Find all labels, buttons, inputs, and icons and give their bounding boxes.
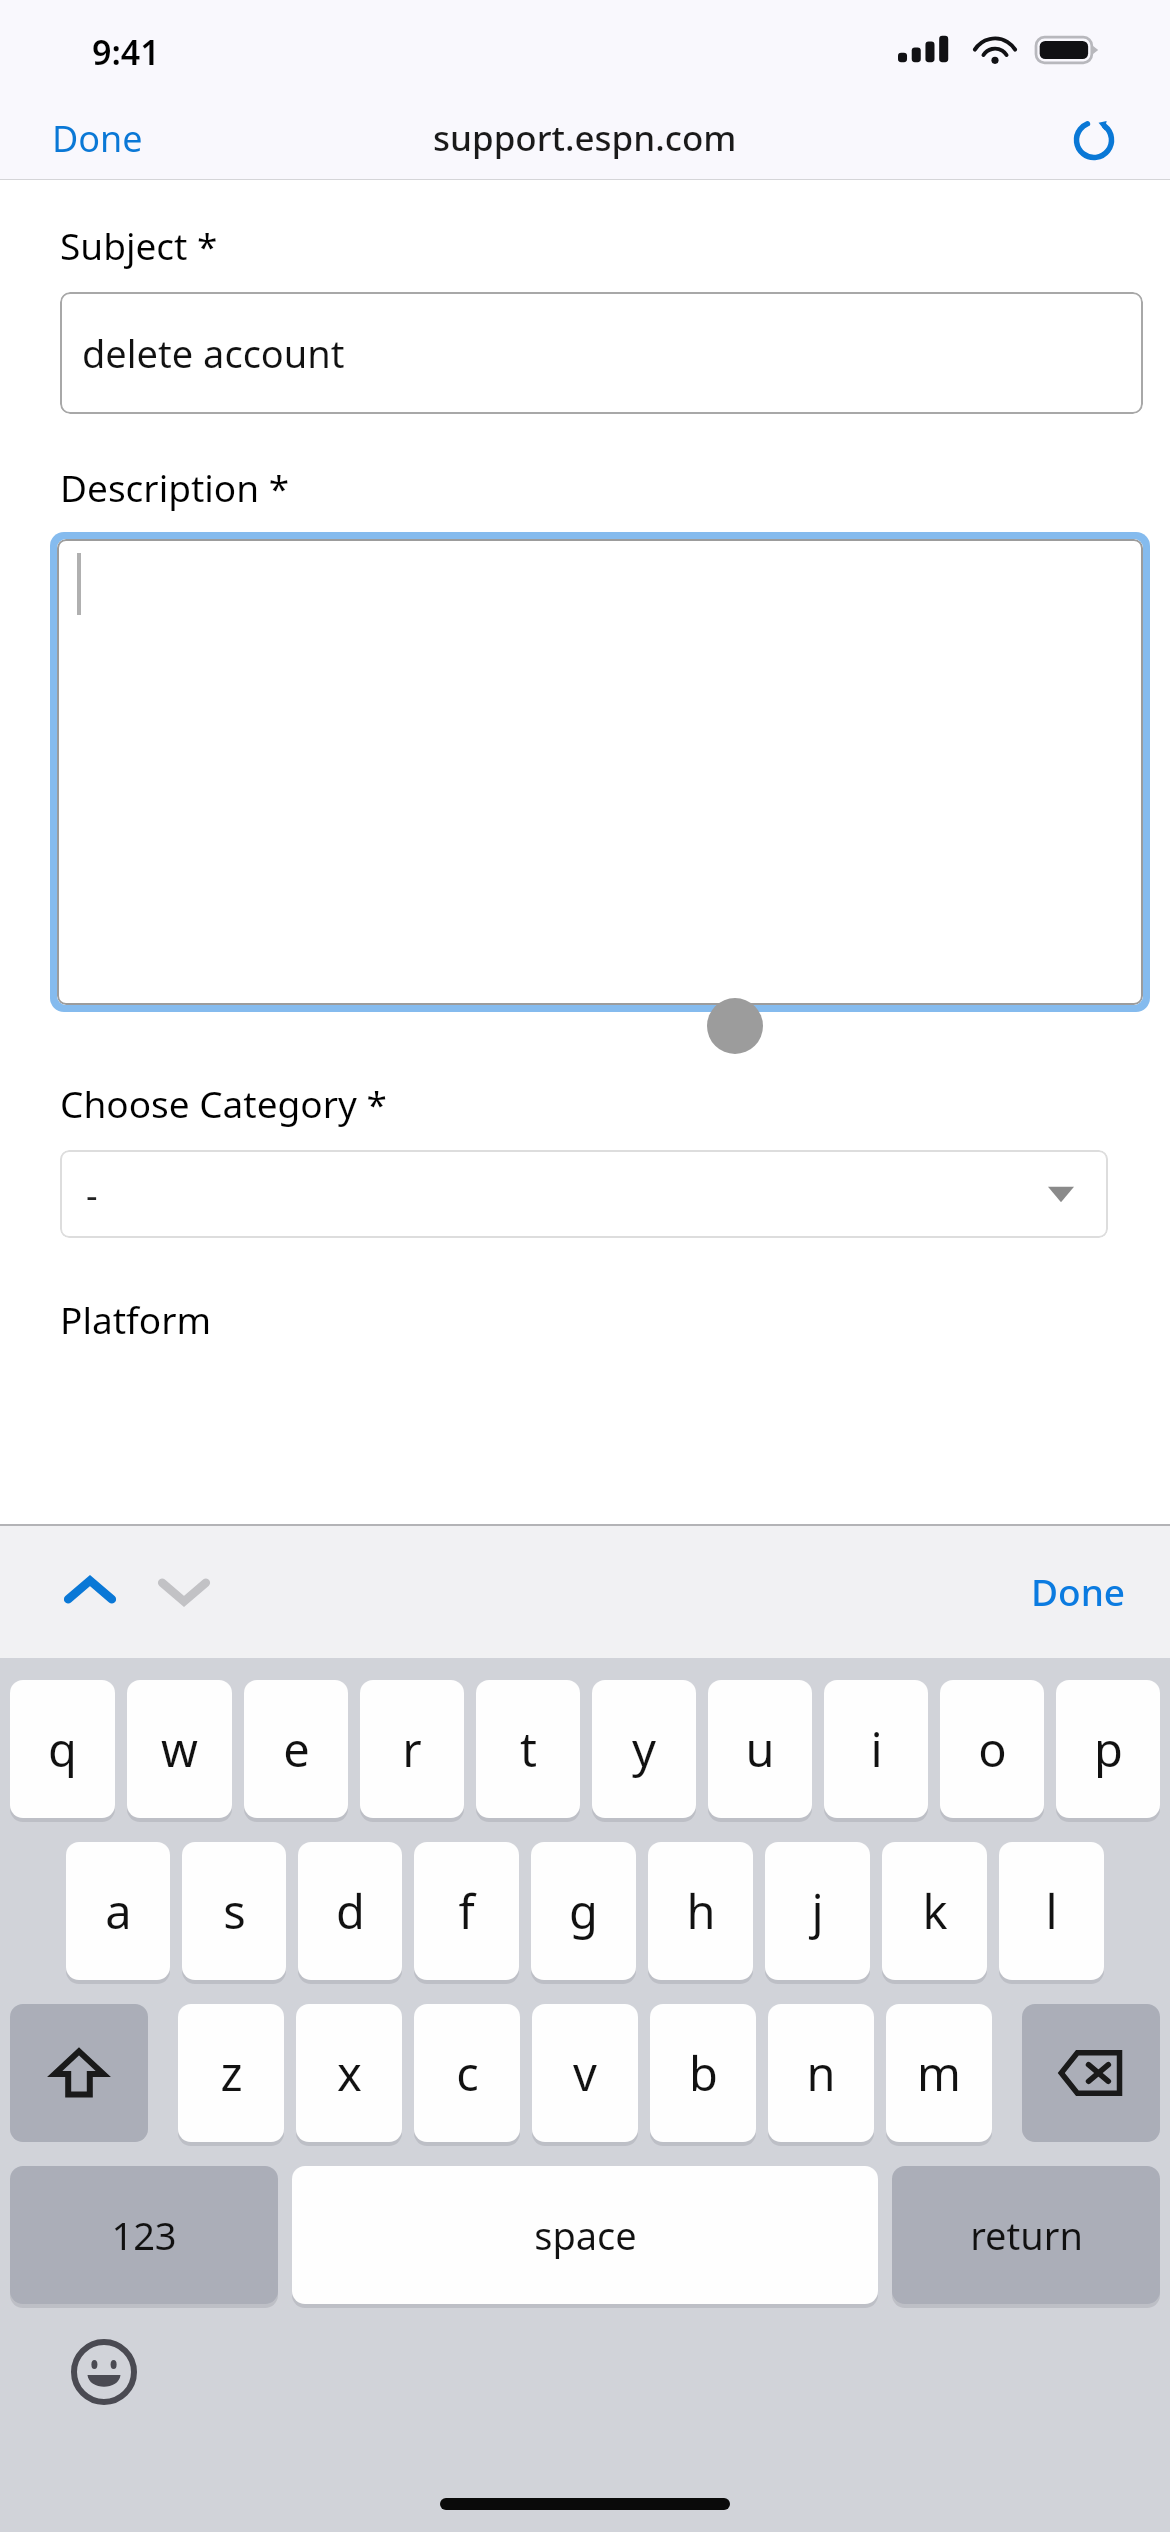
staticText: Done (1031, 1566, 1126, 1616)
staticText: Description * (60, 462, 290, 512)
button[interactable]: v (532, 2004, 638, 2142)
staticText: q (48, 1717, 77, 1781)
staticText: a (105, 1879, 132, 1943)
staticText: z (220, 2041, 243, 2105)
staticText: l (1045, 1879, 1058, 1943)
button[interactable]: Previous field (48, 1549, 132, 1633)
button[interactable]: Emoji (62, 2330, 146, 2414)
staticText: n (806, 2041, 836, 2105)
staticText: i (870, 1717, 883, 1781)
button[interactable]: z (178, 2004, 284, 2142)
staticText: h (686, 1879, 716, 1943)
button[interactable]: Shift (10, 2004, 148, 2142)
button[interactable]: g (531, 1842, 636, 1980)
button[interactable]: h (648, 1842, 753, 1980)
button[interactable]: - (60, 1150, 1108, 1238)
button[interactable]: m (886, 2004, 992, 2142)
button[interactable]: p (1056, 1680, 1160, 1818)
button[interactable]: return (892, 2166, 1160, 2304)
button[interactable]: k (882, 1842, 987, 1980)
staticText: Choose Category * (60, 1078, 387, 1128)
staticText: w (161, 1717, 198, 1781)
staticText: u (745, 1717, 775, 1781)
staticText: r (402, 1717, 422, 1781)
button[interactable]: i (824, 1680, 928, 1818)
button[interactable]: c (414, 2004, 520, 2142)
button[interactable]: r (360, 1680, 464, 1818)
staticText: e (283, 1717, 310, 1781)
button[interactable]: space (292, 2166, 878, 2304)
button[interactable]: d (298, 1842, 402, 1980)
button[interactable]: Reload (1058, 102, 1130, 174)
button[interactable]: e (244, 1680, 348, 1818)
staticText: support.espn.com (433, 114, 737, 162)
staticText: j (811, 1879, 824, 1943)
button[interactable]: Done (0, 102, 195, 175)
staticText: Done (52, 114, 143, 163)
button[interactable]: y (592, 1680, 696, 1818)
button[interactable]: Done (987, 1550, 1170, 1632)
button[interactable]: u (708, 1680, 812, 1818)
staticText: o (978, 1717, 1007, 1781)
staticText: Subject * (60, 220, 218, 270)
button[interactable]: q (10, 1680, 115, 1818)
staticText: s (223, 1879, 246, 1943)
staticText: p (1094, 1717, 1123, 1781)
staticText: - (86, 1170, 98, 1219)
button[interactable]: Backspace (1022, 2004, 1160, 2142)
button[interactable]: b (650, 2004, 756, 2142)
staticText: 123 (111, 2209, 177, 2261)
staticText: Platform (60, 1294, 212, 1344)
staticText: d (336, 1879, 365, 1943)
staticText: g (569, 1879, 598, 1943)
button[interactable]: t (476, 1680, 580, 1818)
staticText: t (520, 1717, 537, 1781)
button[interactable]: Next field (142, 1549, 226, 1633)
button[interactable]: w (127, 1680, 232, 1818)
staticText: delete account (82, 327, 345, 379)
staticText: v (573, 2041, 597, 2105)
staticText: 9:41 (92, 29, 160, 75)
button[interactable]: l (999, 1842, 1104, 1980)
button[interactable] (57, 539, 1143, 1005)
staticText: c (456, 2041, 479, 2105)
button[interactable]: f (414, 1842, 519, 1980)
staticText: m (917, 2041, 961, 2105)
button[interactable]: a (66, 1842, 170, 1980)
staticText: f (458, 1879, 475, 1943)
staticText: space (534, 2209, 637, 2261)
staticText: k (922, 1879, 948, 1943)
staticText: b (689, 2041, 718, 2105)
staticText: return (970, 2209, 1083, 2261)
button[interactable]: o (940, 1680, 1044, 1818)
button[interactable]: 123 (10, 2166, 278, 2304)
button[interactable]: j (765, 1842, 870, 1980)
button[interactable]: n (768, 2004, 874, 2142)
button[interactable]: delete account (60, 292, 1143, 414)
staticText: y (632, 1717, 656, 1781)
staticText: x (337, 2041, 362, 2105)
button[interactable]: x (296, 2004, 402, 2142)
button[interactable]: s (182, 1842, 286, 1980)
